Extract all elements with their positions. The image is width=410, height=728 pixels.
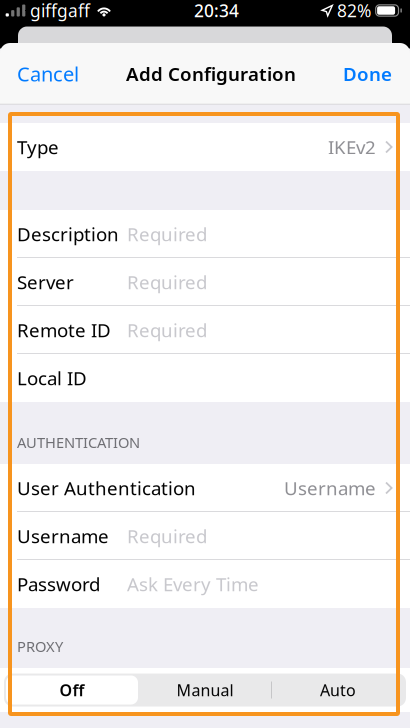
staticText: Remote ID bbox=[17, 318, 111, 342]
button[interactable]: User Authentication bbox=[0, 464, 410, 512]
button[interactable]: Manual bbox=[139, 675, 271, 704]
staticText: Required bbox=[127, 222, 207, 246]
staticText: Required bbox=[127, 318, 207, 342]
staticText: Password bbox=[17, 572, 100, 596]
staticText: Ask Every Time bbox=[127, 572, 259, 596]
staticText: Server bbox=[17, 270, 74, 294]
button[interactable]: Cancel bbox=[17, 60, 79, 87]
staticText: IKEv2 bbox=[328, 135, 376, 159]
button[interactable]: Local ID bbox=[0, 354, 410, 402]
staticText: Off bbox=[59, 679, 84, 701]
staticText: Manual bbox=[176, 679, 233, 701]
staticText: PROXY bbox=[17, 636, 63, 656]
staticText: Description bbox=[17, 222, 119, 246]
button[interactable]: Remote ID bbox=[0, 306, 410, 354]
staticText: Type bbox=[17, 135, 59, 159]
button[interactable]: Done bbox=[343, 61, 392, 86]
staticText: Username bbox=[284, 476, 376, 500]
staticText: Add Configuration bbox=[126, 61, 296, 86]
staticText: Auto bbox=[320, 679, 356, 701]
button[interactable]: Server bbox=[0, 258, 410, 306]
staticText: AUTHENTICATION bbox=[17, 432, 140, 452]
staticText: User Authentication bbox=[17, 476, 196, 500]
staticText: 20:34 bbox=[194, 0, 239, 22]
button[interactable]: Username bbox=[0, 512, 410, 560]
button[interactable]: Description bbox=[0, 210, 410, 258]
staticText: Required bbox=[127, 270, 207, 294]
staticText: Cancel bbox=[17, 60, 79, 87]
staticText: Username bbox=[17, 524, 109, 548]
staticText: 82% bbox=[337, 0, 371, 22]
staticText: Required bbox=[127, 524, 207, 548]
button[interactable]: Off bbox=[6, 675, 138, 704]
button[interactable]: Type bbox=[0, 123, 410, 171]
staticText: Local ID bbox=[17, 366, 87, 390]
staticText: Done bbox=[343, 61, 392, 86]
staticText: giffgaff bbox=[30, 0, 90, 22]
button[interactable]: Password bbox=[0, 560, 410, 608]
button[interactable]: Auto bbox=[272, 675, 404, 704]
